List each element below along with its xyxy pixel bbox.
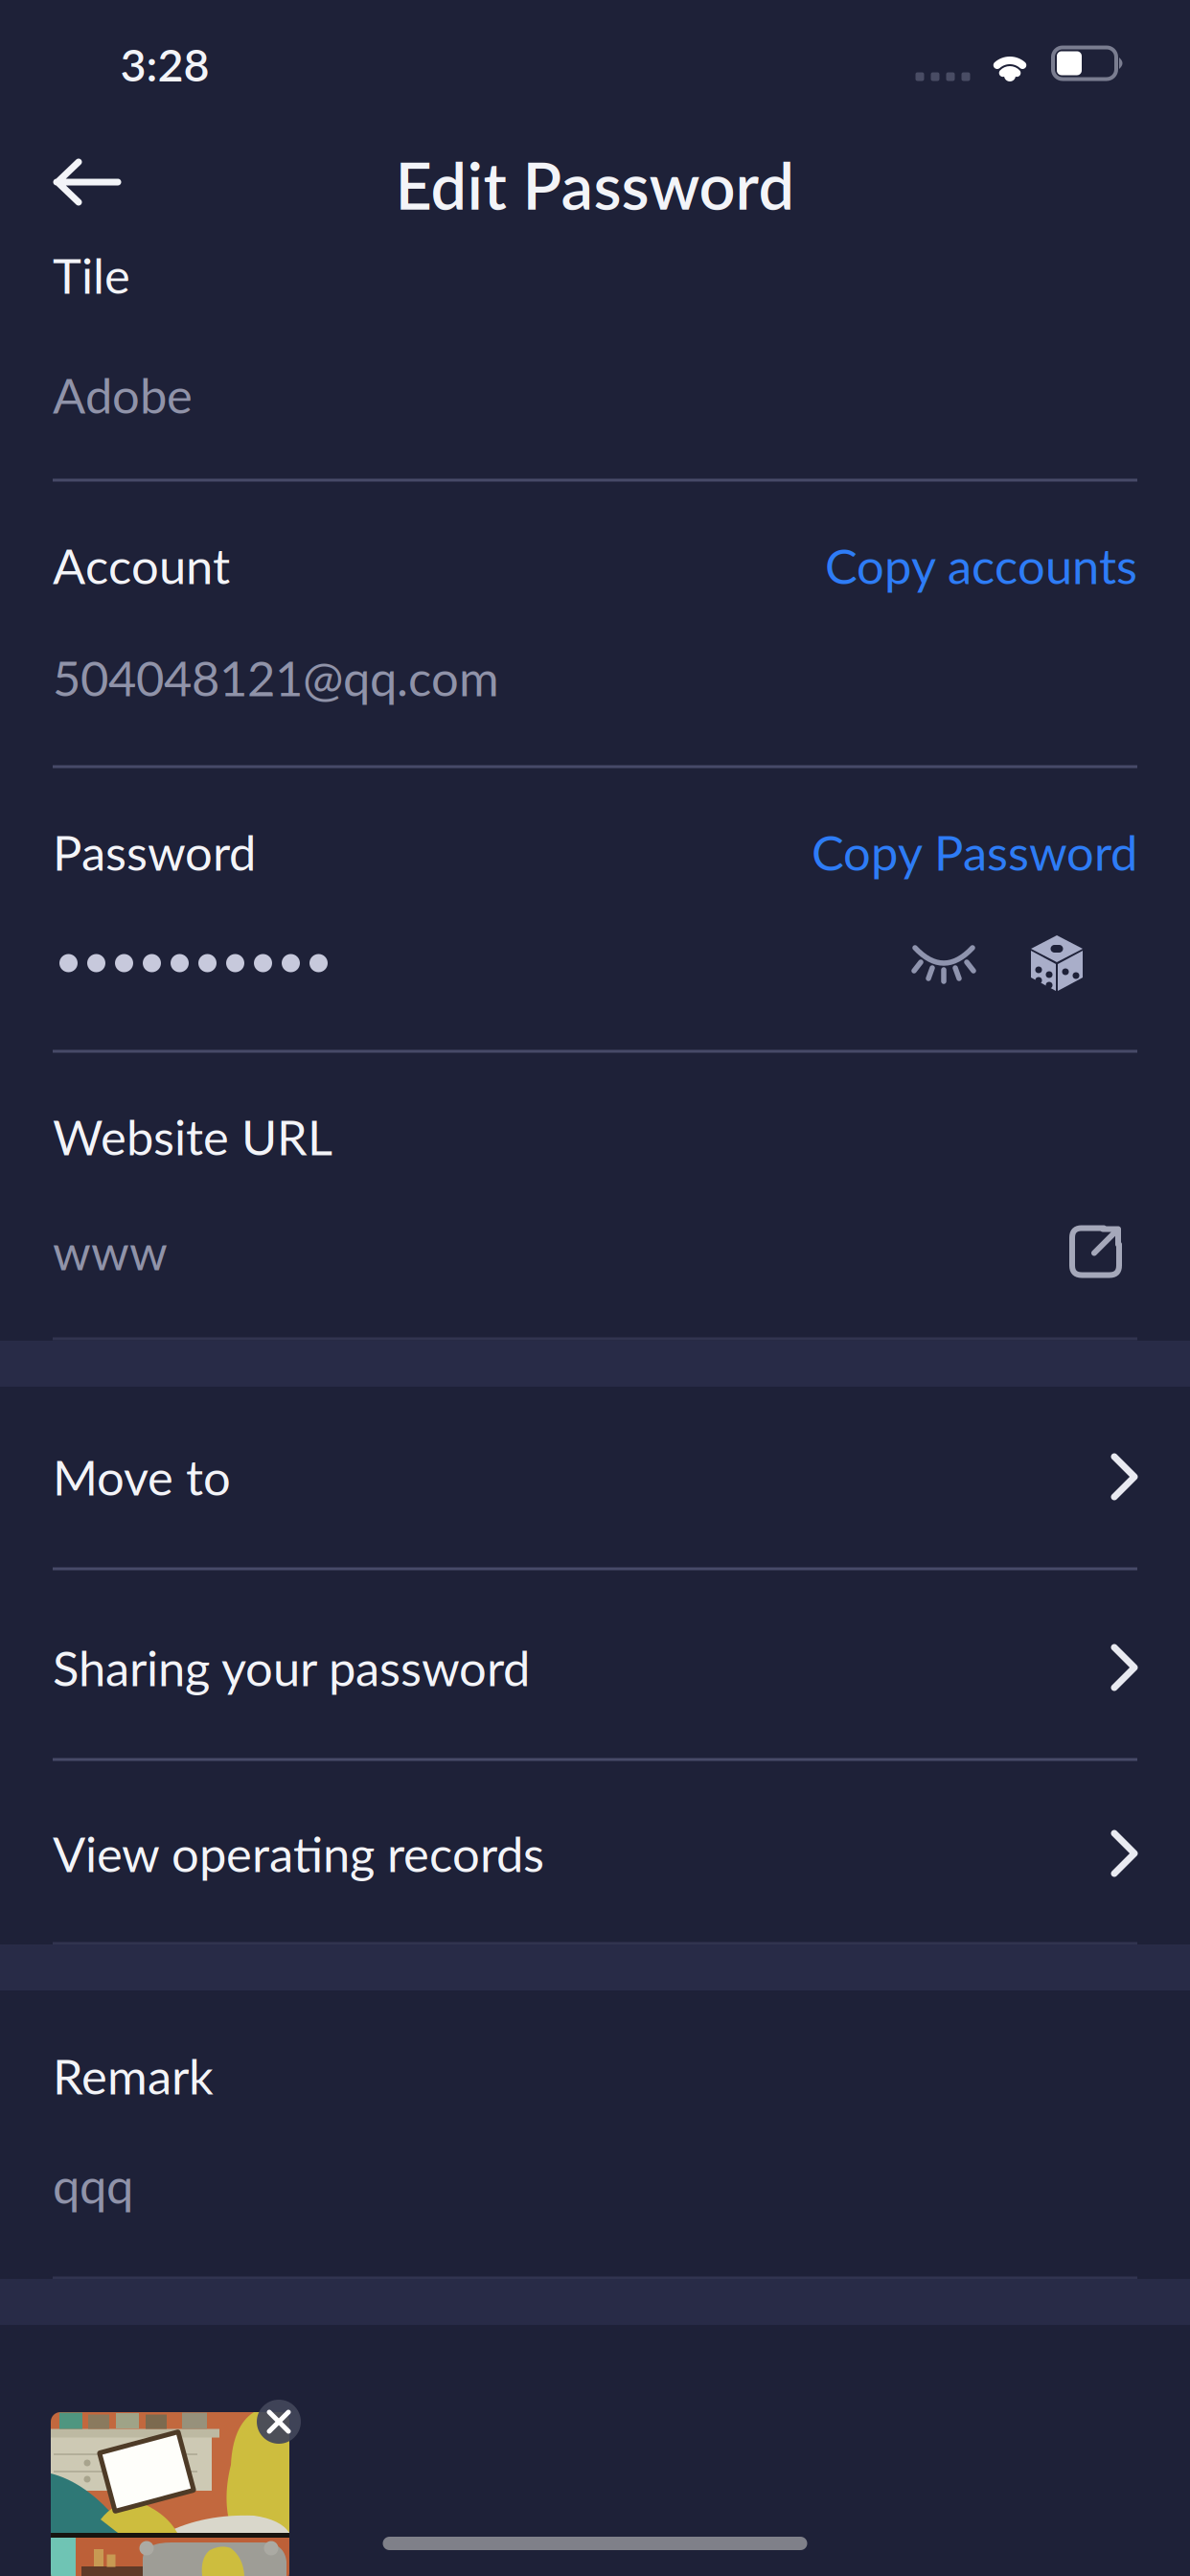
staticText: Adobe	[53, 366, 193, 424]
staticText: Copy Password	[812, 823, 1137, 881]
staticText: Sharing your password	[53, 1638, 530, 1697]
button[interactable]: Move to	[53, 1448, 1137, 1506]
staticText: www	[53, 1222, 168, 1281]
staticText: 504048121@qq.com	[53, 648, 499, 707]
button[interactable]: Sharing your password	[53, 1638, 1137, 1697]
staticText: Edit Password	[395, 147, 795, 223]
button[interactable]: Advertisement	[51, 2412, 289, 2576]
button[interactable]: Back	[39, 144, 135, 220]
button[interactable]: Show password	[912, 943, 975, 983]
button[interactable]: Generate random password	[1031, 935, 1083, 991]
staticText: Copy accounts	[825, 536, 1137, 595]
button[interactable]: Copy accounts	[825, 536, 1137, 595]
staticText: Account	[53, 536, 230, 595]
staticText: 3:28	[120, 37, 209, 91]
button[interactable]: View operating records	[53, 1824, 1137, 1883]
staticText: View operating records	[53, 1824, 544, 1883]
button[interactable]: Open website	[1069, 1225, 1121, 1278]
staticText: Move to	[53, 1448, 231, 1506]
button[interactable]: Close ad	[257, 2400, 301, 2444]
staticText: Remark	[53, 2047, 214, 2105]
staticText: Tile	[53, 246, 130, 304]
staticText: Website URL	[53, 1107, 332, 1166]
button[interactable]: Copy Password	[812, 823, 1137, 881]
staticText: qqq	[53, 2156, 133, 2214]
staticText: Password	[53, 823, 256, 881]
